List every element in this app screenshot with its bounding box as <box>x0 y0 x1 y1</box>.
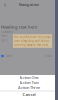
staticText: Action One <box>19 75 38 80</box>
button[interactable]: Cancel <box>0 92 58 97</box>
staticText: label <box>1 39 8 42</box>
button[interactable]: Action One <box>0 75 58 80</box>
staticText: Label <box>6 54 13 58</box>
button[interactable]: Action Three <box>0 85 58 90</box>
staticText: Navigation <box>18 2 39 7</box>
staticText: Cancel <box>22 92 35 97</box>
staticText: the quick brown fox jumps <box>14 35 51 39</box>
staticText: over a lazy dog and keeps <box>14 39 49 43</box>
button[interactable]: Action Two <box>0 80 58 85</box>
staticText: Action Two <box>19 80 38 85</box>
staticText: label <box>1 34 8 38</box>
staticText: Heading text here <box>1 24 37 30</box>
staticText: ‹ <box>4 0 6 9</box>
staticText: running away so fast now <box>14 43 48 47</box>
button[interactable]: Label <box>1 54 53 58</box>
staticText: Value <box>45 54 53 58</box>
staticText: Action Three <box>18 85 40 90</box>
staticText: subtitle <box>1 29 13 34</box>
button[interactable]: Back <box>2 0 8 8</box>
